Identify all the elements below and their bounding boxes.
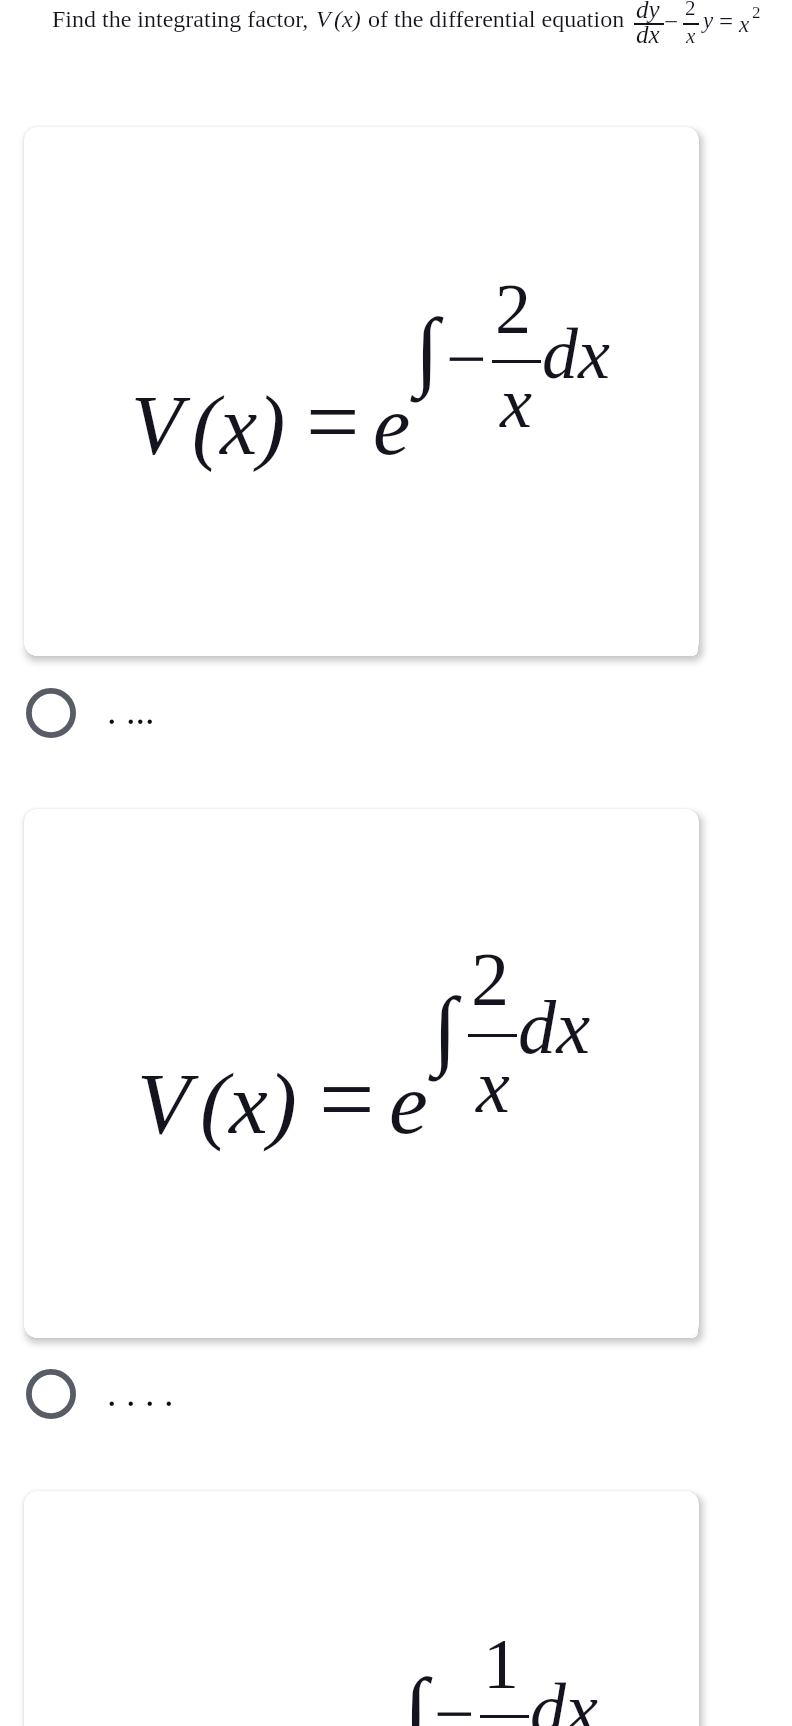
staticText: (x) bbox=[192, 379, 286, 472]
staticText: dx bbox=[518, 985, 591, 1070]
staticText: . . . . bbox=[107, 1372, 174, 1414]
staticText: = bbox=[719, 8, 734, 36]
staticText: − bbox=[446, 319, 487, 399]
staticText: of the differential equation bbox=[368, 6, 625, 33]
staticText: (x) bbox=[334, 6, 361, 33]
staticText: − bbox=[664, 8, 679, 36]
staticText: Find the integrating factor, bbox=[52, 6, 309, 33]
staticText: e bbox=[373, 379, 411, 472]
staticText: = bbox=[306, 369, 360, 474]
staticText: 2 bbox=[471, 937, 510, 1022]
button[interactable]: Answer option bbox=[0, 1359, 792, 1429]
button[interactable]: Answer option bbox=[0, 678, 792, 748]
staticText: x bbox=[476, 1044, 510, 1129]
staticText: ∫ bbox=[415, 301, 440, 398]
staticText: V bbox=[316, 6, 331, 33]
staticText: ∫ bbox=[433, 980, 458, 1077]
staticText: dx bbox=[636, 21, 660, 49]
staticText: dy bbox=[636, 0, 660, 24]
staticText: e bbox=[389, 1055, 428, 1152]
staticText: x bbox=[686, 24, 696, 47]
staticText: dx bbox=[530, 1669, 598, 1726]
staticText: y bbox=[703, 8, 714, 33]
staticText: 2 bbox=[685, 0, 696, 19]
staticText: dx bbox=[542, 314, 610, 394]
staticText: 2 bbox=[495, 269, 531, 349]
staticText: ∫ bbox=[404, 1661, 429, 1726]
staticText: 2 bbox=[752, 3, 761, 22]
staticText: − bbox=[434, 1674, 475, 1726]
staticText: 1 bbox=[483, 1624, 519, 1704]
staticText: (x) bbox=[200, 1055, 297, 1152]
button[interactable]: Answer A bbox=[24, 127, 699, 656]
button[interactable]: Answer C bbox=[24, 1491, 699, 1726]
staticText: V bbox=[137, 1055, 191, 1152]
button[interactable]: Answer B bbox=[24, 809, 699, 1338]
staticText: V bbox=[131, 379, 183, 472]
staticText: = bbox=[319, 1045, 375, 1154]
staticText: . ... bbox=[107, 690, 155, 732]
staticText: x bbox=[739, 12, 750, 37]
staticText: x bbox=[500, 363, 532, 443]
